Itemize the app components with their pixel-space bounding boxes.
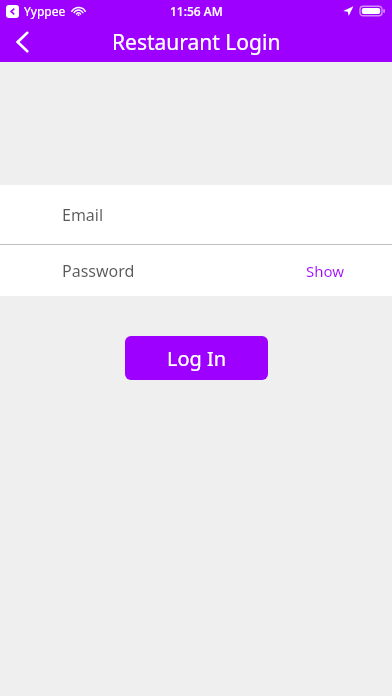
staticText: Log In [167, 345, 227, 372]
button[interactable]: Back [0, 22, 44, 62]
button[interactable]: Email [0, 185, 392, 244]
staticText: Restaurant Login [112, 28, 281, 57]
staticText: Email [62, 204, 104, 226]
button[interactable]: Password [0, 245, 392, 296]
staticText: Password [62, 260, 135, 282]
button[interactable]: Log In [125, 336, 268, 380]
staticText: 11:56 AM [170, 3, 223, 19]
staticText: Yyppee [24, 3, 66, 19]
button[interactable]: Show [306, 261, 345, 281]
staticText: Show [306, 261, 345, 281]
